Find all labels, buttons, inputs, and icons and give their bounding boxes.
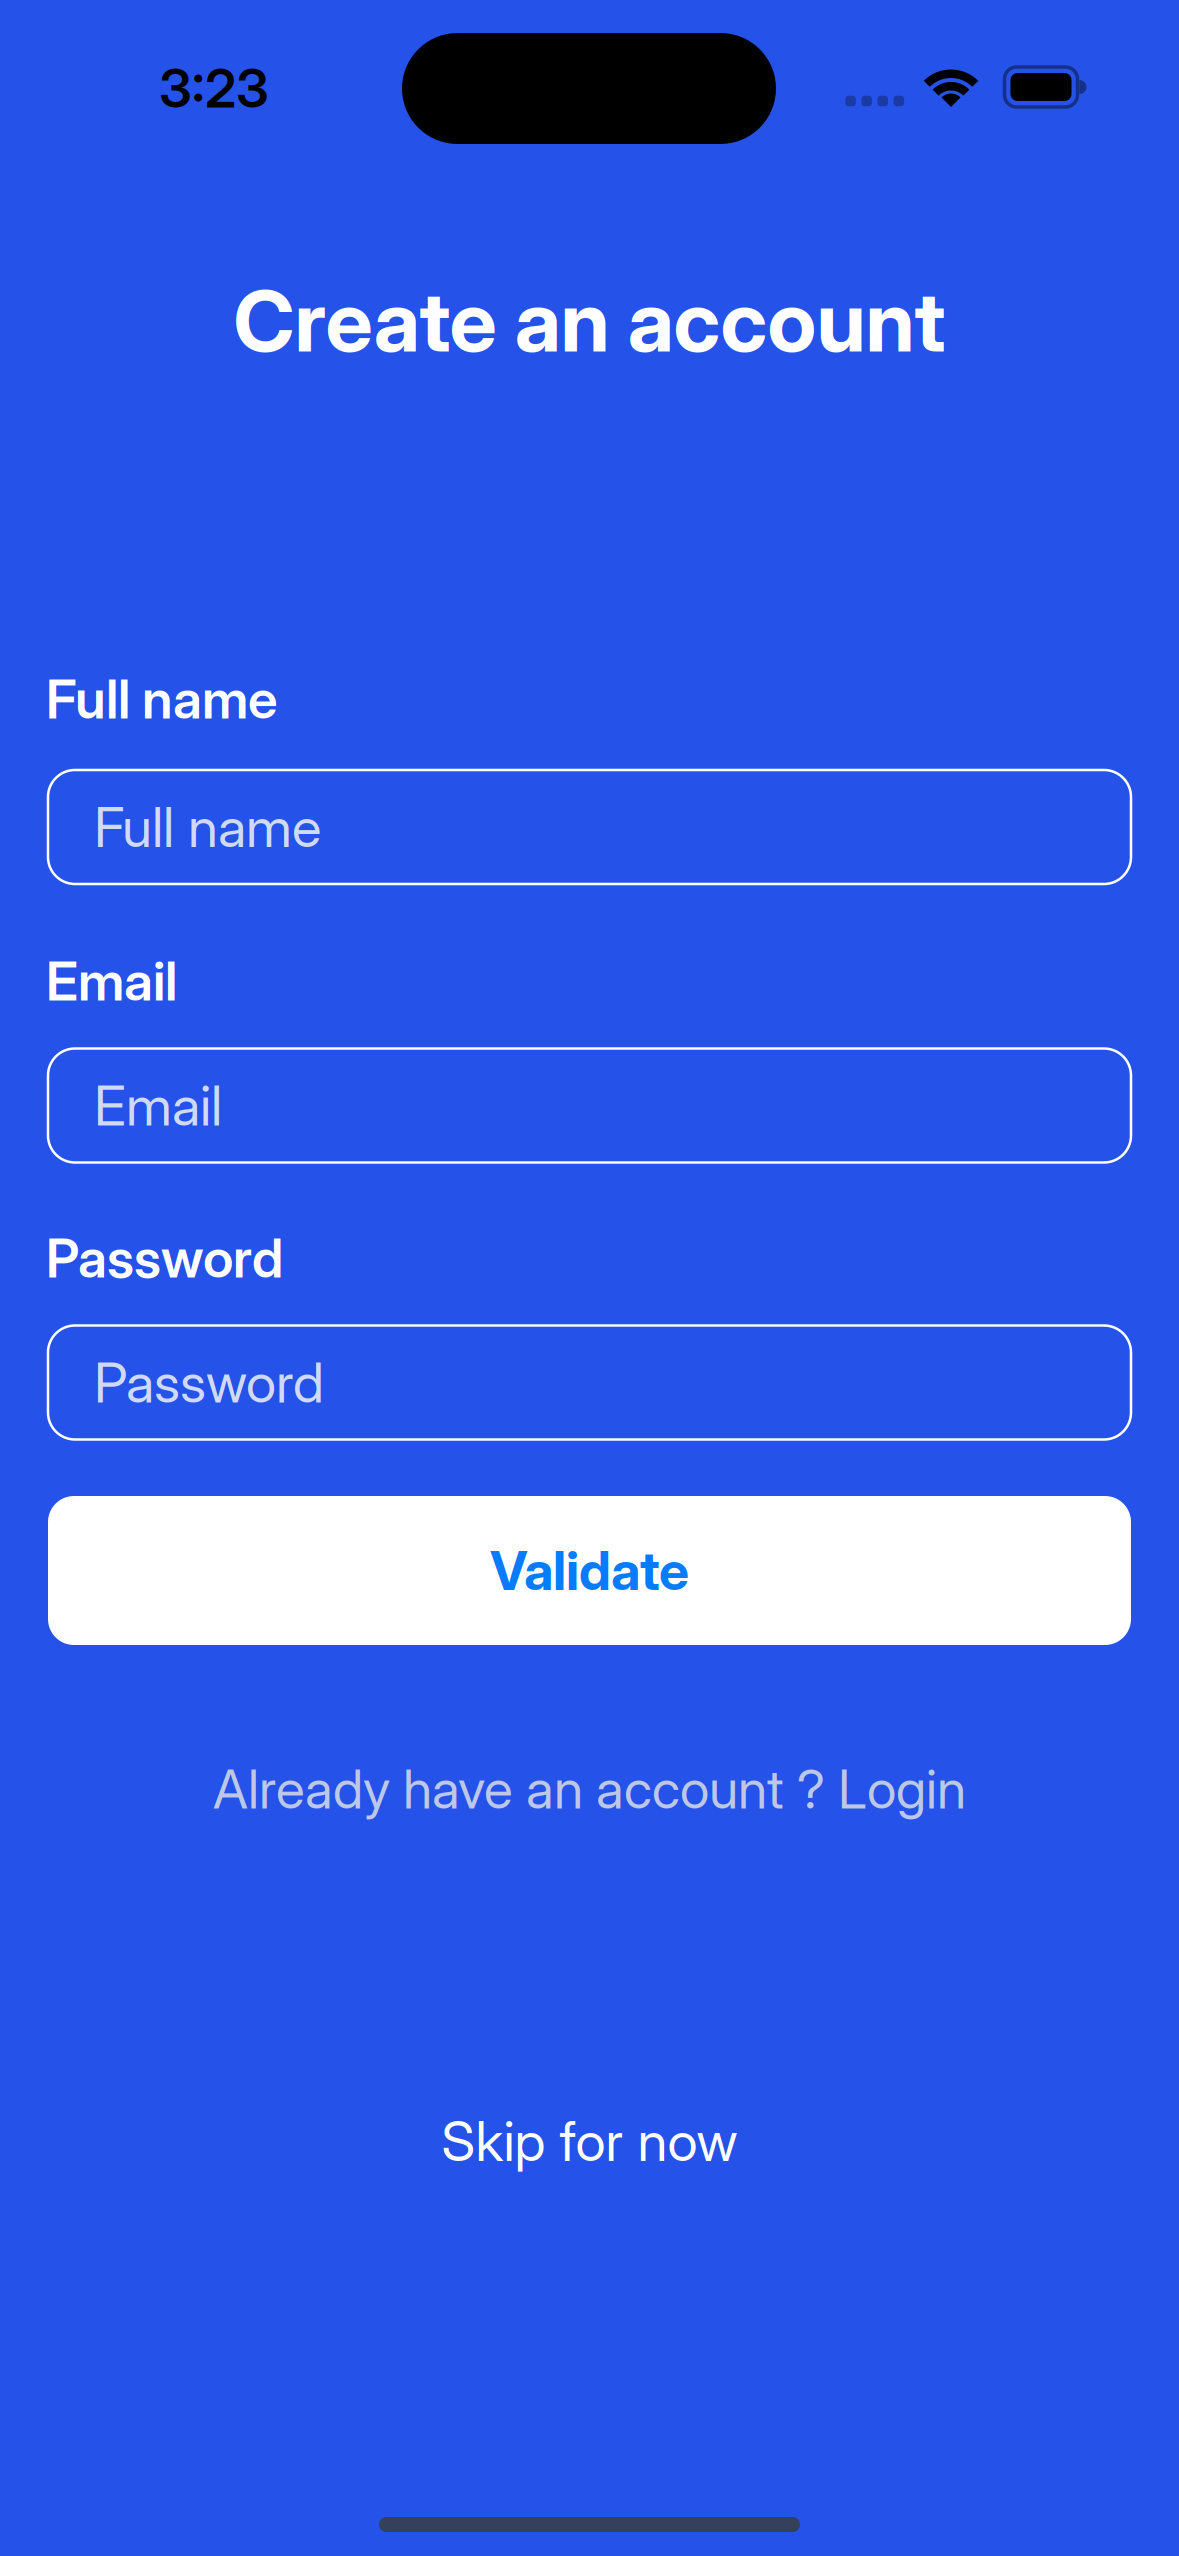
button[interactable]: Validate bbox=[48, 1496, 1131, 1645]
staticText: Skip for now bbox=[441, 2109, 737, 2173]
staticText: Create an account bbox=[233, 271, 945, 371]
staticText: 3:23 bbox=[159, 56, 269, 119]
staticText: Email bbox=[94, 1073, 222, 1138]
staticText: Full name bbox=[46, 667, 278, 730]
button[interactable]: Already have an account ? Login bbox=[213, 1757, 966, 1820]
button[interactable]: Email bbox=[48, 1048, 1131, 1162]
button[interactable]: Password bbox=[48, 1325, 1131, 1439]
button[interactable]: Skip for now bbox=[441, 2109, 737, 2173]
staticText: Email bbox=[46, 949, 177, 1012]
staticText: Full name bbox=[94, 795, 321, 859]
staticText: Already have an account ? Login bbox=[213, 1757, 966, 1820]
staticText: Password bbox=[94, 1350, 324, 1415]
button[interactable]: Full name bbox=[48, 770, 1131, 884]
staticText: Validate bbox=[490, 1539, 689, 1602]
staticText: Password bbox=[46, 1226, 283, 1289]
